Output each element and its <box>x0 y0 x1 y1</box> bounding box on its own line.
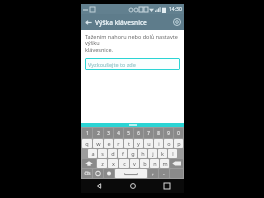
staticText: u <box>147 140 151 147</box>
button[interactable]: q <box>82 139 92 148</box>
staticText: Vyzkoušejte to zde <box>88 61 136 68</box>
staticText: e <box>107 140 111 147</box>
staticText: d <box>111 150 115 157</box>
staticText: 2 <box>97 130 100 136</box>
button[interactable]: , <box>148 169 158 178</box>
button[interactable]: o <box>164 139 173 148</box>
staticText: a <box>91 150 95 157</box>
button[interactable]: m <box>160 159 169 168</box>
staticText: q <box>85 140 89 147</box>
button[interactable]: r <box>114 139 123 148</box>
button[interactable]: Space <box>115 169 147 178</box>
staticText: f <box>122 150 124 157</box>
staticText: 14:30 <box>169 6 182 13</box>
button[interactable]: s <box>98 149 107 158</box>
button[interactable]: p <box>174 139 183 148</box>
button[interactable]: Preview <box>170 14 184 30</box>
button[interactable]: 4 <box>114 128 123 138</box>
button[interactable]: Resize keyboard handle <box>81 123 184 127</box>
staticText: w <box>96 140 101 147</box>
button[interactable]: 5 <box>124 128 133 138</box>
staticText: v <box>133 160 136 167</box>
button[interactable]: j <box>148 149 157 158</box>
staticText: 7 <box>147 130 150 136</box>
button[interactable]: . <box>159 169 169 178</box>
button[interactable]: b <box>140 159 149 168</box>
button[interactable]: n <box>150 159 159 168</box>
button[interactable]: 8 <box>154 128 163 138</box>
staticText: 5 <box>127 130 130 136</box>
button[interactable]: 9 <box>164 128 173 138</box>
button[interactable]: Shift <box>82 159 96 168</box>
staticText: , <box>152 170 154 177</box>
staticText: m <box>162 160 168 167</box>
button[interactable]: 1 <box>82 128 92 138</box>
button[interactable]: 2 <box>93 128 103 138</box>
staticText: c <box>123 160 126 167</box>
staticText: 1 <box>86 130 89 136</box>
button[interactable]: Backspace <box>170 159 183 168</box>
staticText: o <box>167 140 171 147</box>
staticText: 0 <box>177 130 180 136</box>
staticText: 8 <box>157 130 160 136</box>
button[interactable]: Vyzkoušejte to zde <box>85 58 180 70</box>
staticText: r <box>117 140 120 147</box>
button[interactable]: 6 <box>134 128 143 138</box>
button[interactable]: d <box>108 149 117 158</box>
button[interactable]: x <box>108 159 118 168</box>
staticText: i <box>158 140 160 147</box>
staticText: l <box>172 150 174 157</box>
button[interactable]: e <box>104 139 113 148</box>
staticText: j <box>152 150 154 157</box>
staticText: Výška klávesnice <box>95 18 147 27</box>
button[interactable]: 0 <box>174 128 183 138</box>
button[interactable]: i <box>154 139 163 148</box>
staticText: x <box>112 160 115 167</box>
staticText: Tažením nahoru nebo dolů nastavte výšku … <box>85 33 180 54</box>
button[interactable]: l <box>168 149 177 158</box>
button[interactable]: v <box>130 159 139 168</box>
button[interactable]: Home <box>116 179 150 193</box>
staticText: ČÍS <box>84 171 91 176</box>
staticText: 4 <box>117 130 120 136</box>
button[interactable]: ČÍS <box>82 169 92 178</box>
staticText: s <box>101 150 104 157</box>
button[interactable]: w <box>93 139 103 148</box>
button[interactable]: t <box>124 139 133 148</box>
button[interactable]: g <box>128 149 137 158</box>
staticText: k <box>161 150 164 157</box>
button[interactable]: Emoji <box>93 169 103 178</box>
staticText: . <box>163 170 165 177</box>
button[interactable]: 7 <box>144 128 153 138</box>
button[interactable]: k <box>158 149 167 158</box>
button[interactable]: u <box>144 139 153 148</box>
button[interactable]: f <box>118 149 127 158</box>
button[interactable]: y <box>134 139 143 148</box>
staticText: h <box>141 150 145 157</box>
button[interactable]: Settings <box>104 169 114 178</box>
button[interactable]: Back <box>81 14 95 30</box>
staticText: y <box>137 140 140 147</box>
button[interactable]: h <box>138 149 147 158</box>
staticText: 6 <box>137 130 140 136</box>
staticText: 9 <box>167 130 170 136</box>
button[interactable]: Recents <box>150 179 184 193</box>
button[interactable]: z <box>97 159 107 168</box>
staticText: z <box>101 160 104 167</box>
button[interactable]: a <box>88 149 97 158</box>
staticText: b <box>143 160 147 167</box>
staticText: n <box>153 160 157 167</box>
button[interactable]: 3 <box>104 128 113 138</box>
staticText: g <box>131 150 135 157</box>
staticText: 3 <box>107 130 110 136</box>
button[interactable]: Back <box>81 179 116 193</box>
staticText: t <box>128 140 130 147</box>
staticText: p <box>177 140 181 147</box>
button[interactable]: c <box>119 159 129 168</box>
